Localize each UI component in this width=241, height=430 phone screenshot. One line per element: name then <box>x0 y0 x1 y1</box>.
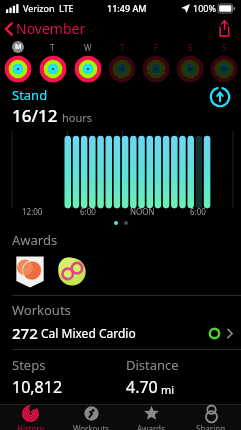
staticText: T <box>120 42 125 53</box>
button[interactable]: Award badge <box>54 253 90 289</box>
staticText: History <box>17 423 44 430</box>
staticText: M <box>15 42 22 52</box>
button[interactable]: November <box>0 17 92 40</box>
staticText: Workouts <box>12 301 71 319</box>
button[interactable]: History <box>0 405 61 430</box>
staticText: NOON <box>130 206 155 217</box>
staticText: 16/12 <box>12 104 58 127</box>
staticText: Awards <box>137 423 165 430</box>
staticText: Awards <box>12 231 58 249</box>
button[interactable]: Award badge <box>12 253 48 289</box>
button[interactable] <box>0 54 35 84</box>
staticText: Workouts <box>73 423 110 430</box>
staticText: S <box>188 42 193 53</box>
staticText: 272 <box>12 323 38 343</box>
staticText: 12:00 <box>22 206 43 217</box>
staticText: 6:00 <box>190 206 206 217</box>
staticText: 11:49 AM <box>107 2 147 14</box>
staticText: 10,812 <box>12 376 63 398</box>
button[interactable] <box>70 54 105 84</box>
staticText: F <box>154 42 159 53</box>
staticText: Distance <box>126 356 179 374</box>
button[interactable]: Share <box>208 18 241 38</box>
button[interactable]: Awards <box>121 405 181 430</box>
button[interactable] <box>35 54 70 84</box>
button[interactable] <box>207 54 241 84</box>
staticText: 6:00 <box>80 206 96 217</box>
staticText: 100% <box>193 2 216 14</box>
staticText: LTE <box>59 2 74 14</box>
staticText: Cal Mixed Cardio <box>41 325 136 341</box>
button[interactable] <box>173 54 207 84</box>
button[interactable] <box>139 54 173 84</box>
staticText: hours <box>62 110 93 125</box>
staticText: Sharing <box>196 423 226 430</box>
staticText: Stand <box>12 86 48 104</box>
staticText: S <box>222 42 227 53</box>
button[interactable]: Sharing <box>181 405 241 430</box>
staticText: T <box>50 42 55 53</box>
button[interactable] <box>105 54 139 84</box>
button[interactable]: Stand goal <box>209 86 231 108</box>
staticText: 4.70 <box>126 376 158 398</box>
staticText: mi <box>161 382 175 397</box>
staticText: Verizon <box>23 2 55 14</box>
button[interactable]: 272 <box>0 319 241 349</box>
button[interactable]: Workouts <box>61 405 121 430</box>
staticText: November <box>16 19 86 38</box>
staticText: W <box>84 42 92 53</box>
staticText: Steps <box>12 356 46 374</box>
